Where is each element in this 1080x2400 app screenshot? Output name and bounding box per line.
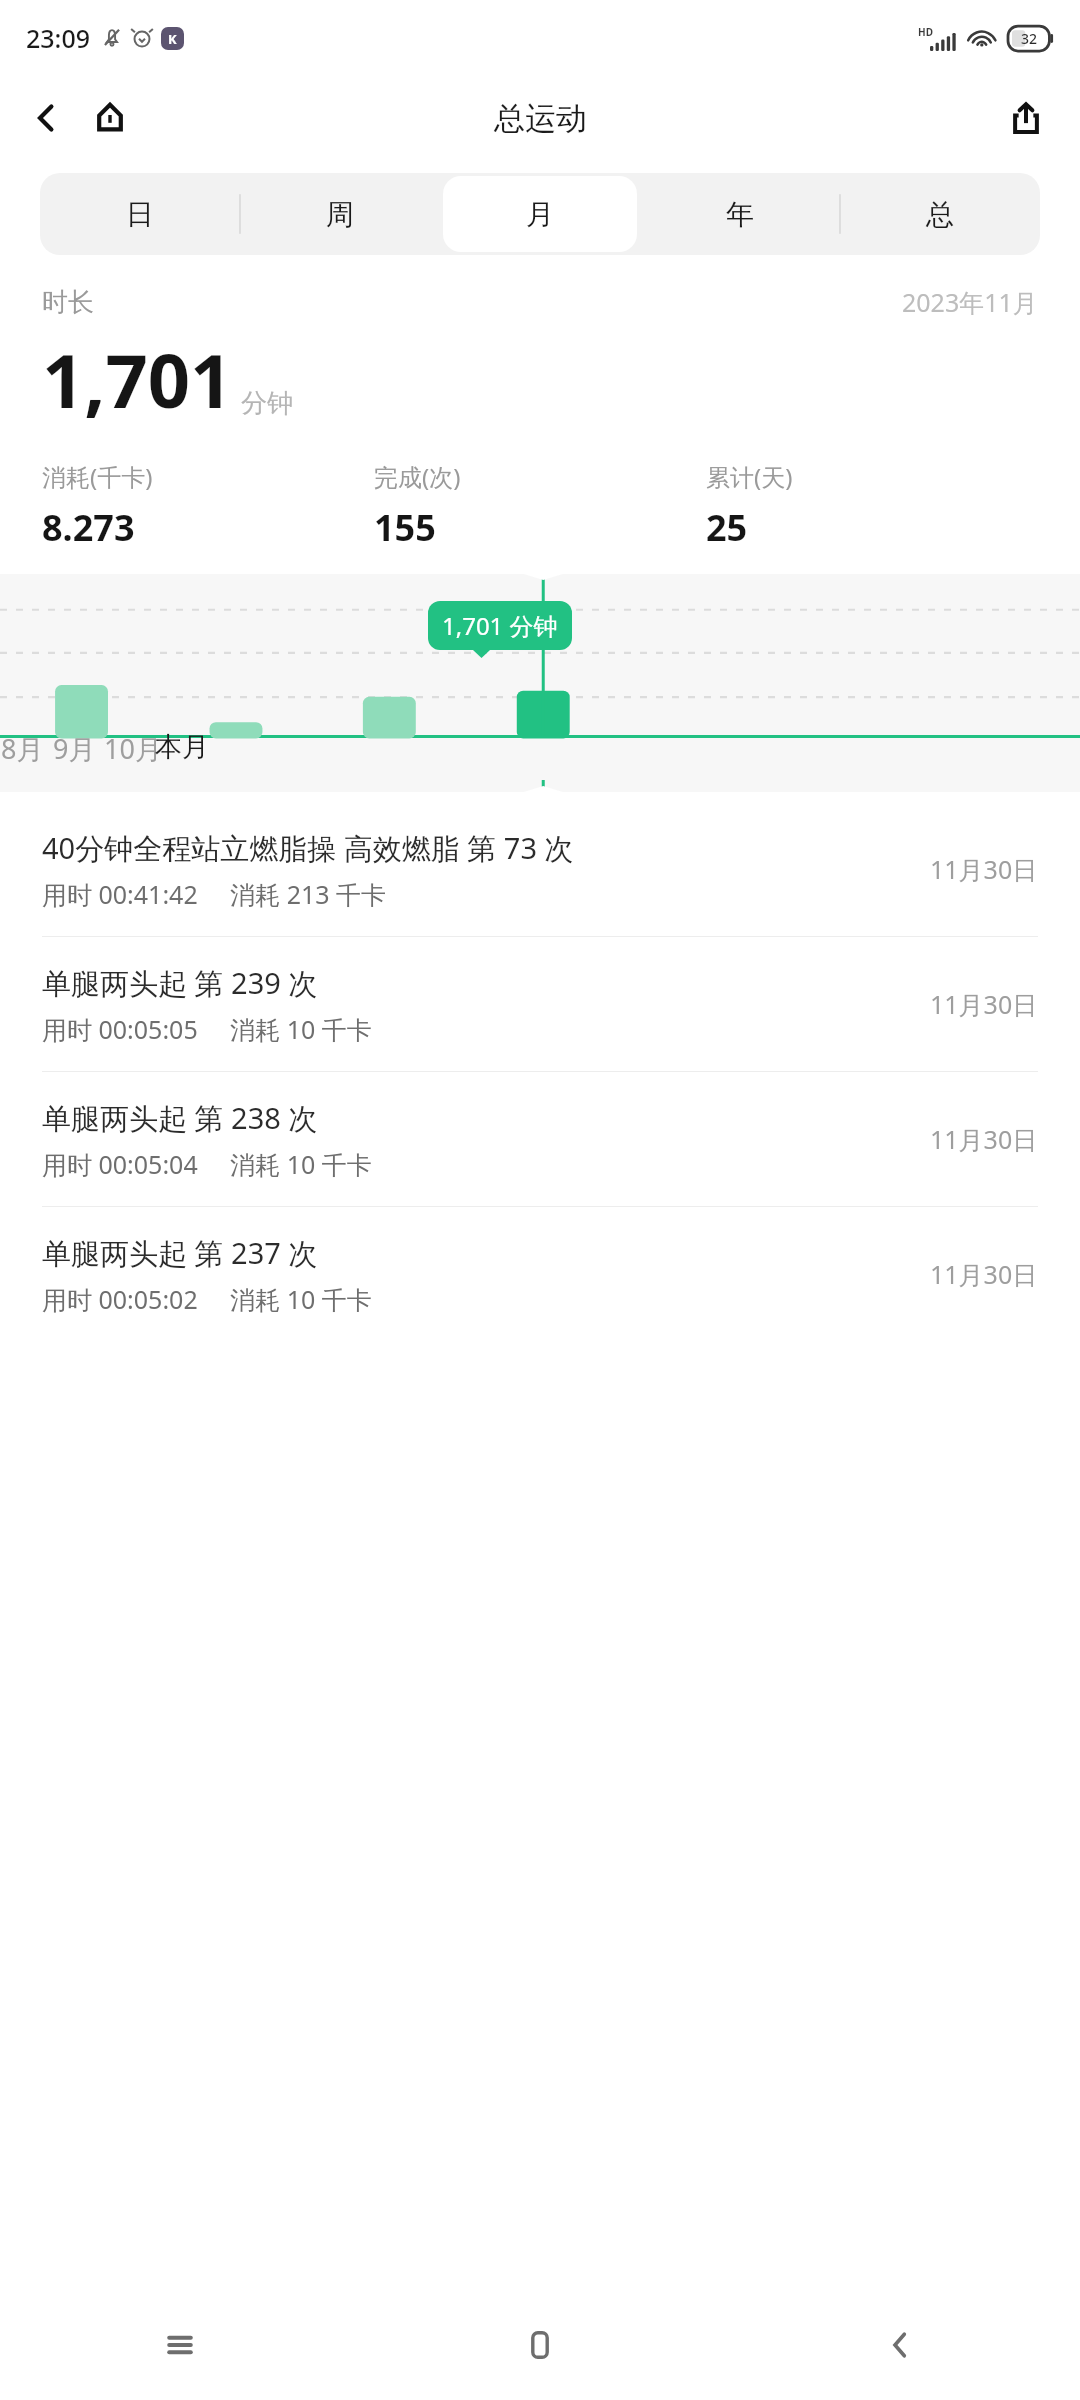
staticText: K: [168, 30, 177, 48]
button[interactable]: 单腿两头起 第 238 次: [0, 1072, 1080, 1206]
button[interactable]: Home: [360, 2290, 720, 2400]
button[interactable]: Back: [18, 90, 74, 146]
staticText: 单腿两头起 第 238 次: [42, 1098, 318, 1138]
staticText: 155: [374, 503, 436, 552]
staticText: 10月: [104, 730, 162, 767]
staticText: 11月30日: [930, 1122, 1038, 1156]
staticText: 11月30日: [930, 1257, 1038, 1291]
staticText: 23:09: [26, 21, 91, 55]
staticText: 消耗(千卡): [42, 460, 153, 493]
button[interactable]: 总: [843, 176, 1037, 252]
staticText: 用时 00:05:04 消耗 10 千卡: [42, 1147, 372, 1181]
staticText: 9月: [53, 730, 96, 767]
staticText: 用时 00:05:02 消耗 10 千卡: [42, 1282, 372, 1316]
staticText: 单腿两头起 第 239 次: [42, 963, 318, 1003]
button[interactable]: 周: [243, 176, 437, 252]
staticText: 分钟: [241, 387, 293, 420]
button[interactable]: Home: [82, 90, 138, 146]
staticText: 累计(天): [706, 460, 793, 493]
button[interactable]: 40分钟全程站立燃脂操 高效燃脂 第 73 次: [0, 802, 1080, 936]
staticText: 用时 00:05:05 消耗 10 千卡: [42, 1012, 372, 1046]
staticText: 32: [1021, 29, 1038, 48]
staticText: 11月30日: [930, 852, 1038, 886]
button[interactable]: 单腿两头起 第 239 次: [0, 937, 1080, 1071]
button[interactable]: Recent apps: [0, 2290, 360, 2400]
staticText: 总: [926, 197, 954, 232]
staticText: 单腿两头起 第 237 次: [42, 1233, 318, 1273]
staticText: HD: [918, 25, 933, 39]
button[interactable]: 月: [443, 176, 637, 252]
staticText: 完成(次): [374, 460, 461, 493]
staticText: 时长: [42, 286, 94, 319]
button[interactable]: 年: [643, 176, 837, 252]
staticText: 25: [706, 503, 748, 552]
staticText: 年: [726, 197, 754, 232]
button[interactable]: 日: [43, 176, 237, 252]
staticText: 2023年11月: [902, 285, 1038, 319]
staticText: 用时 00:41:42 消耗 213 千卡: [42, 877, 387, 911]
staticText: 1,701 分钟: [442, 609, 558, 642]
staticText: 日: [126, 197, 154, 232]
staticText: 月: [526, 197, 554, 232]
button[interactable]: Share: [998, 90, 1054, 146]
staticText: 总运动: [494, 99, 587, 138]
staticText: 1,701: [42, 329, 233, 430]
button[interactable]: Back: [720, 2290, 1080, 2400]
staticText: 周: [326, 197, 354, 232]
staticText: 40分钟全程站立燃脂操 高效燃脂 第 73 次: [42, 828, 574, 868]
button[interactable]: 单腿两头起 第 237 次: [0, 1207, 1080, 1341]
staticText: 8.273: [42, 503, 135, 552]
staticText: 8月: [1, 730, 44, 767]
staticText: 11月30日: [930, 987, 1038, 1021]
staticText: 本月: [155, 730, 209, 764]
